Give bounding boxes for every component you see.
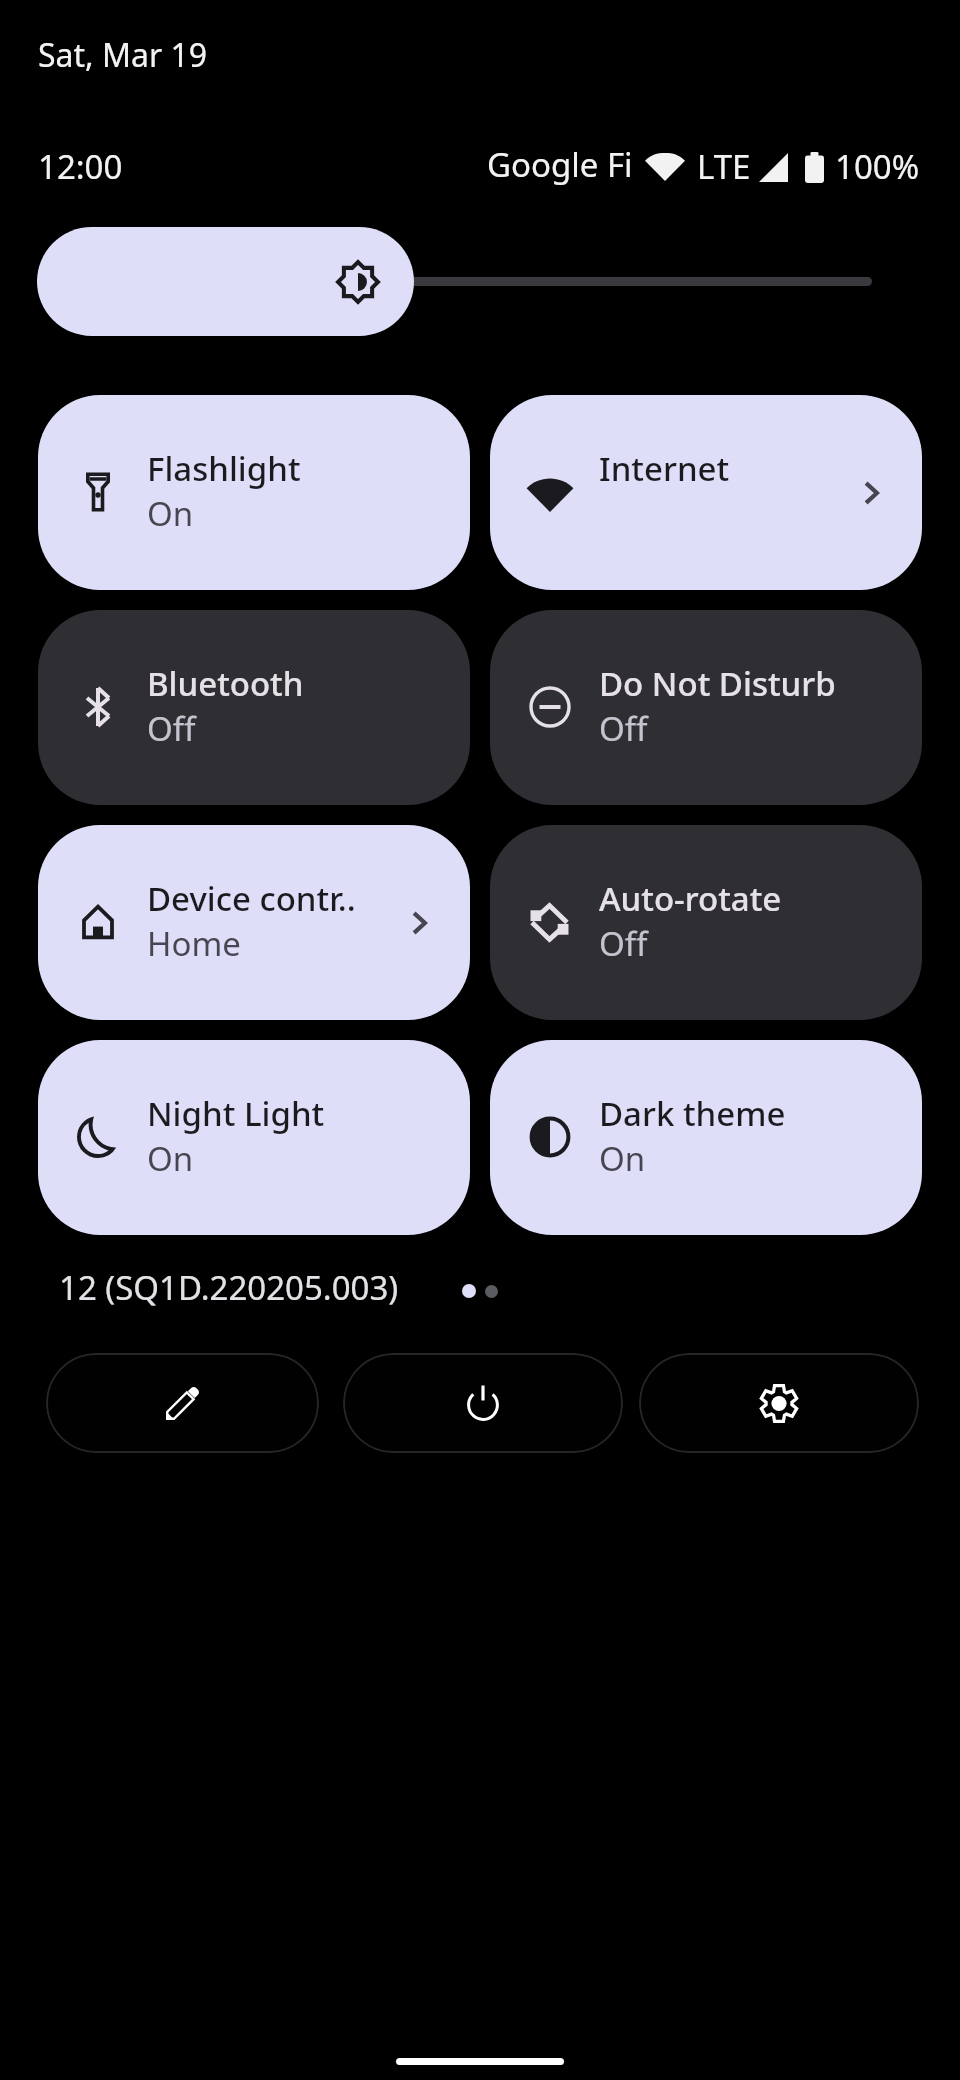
staticText: Home: [147, 921, 241, 966]
button[interactable]: Night Light: [38, 1040, 470, 1235]
staticText: Google Fi: [487, 142, 633, 187]
staticText: Off: [599, 921, 648, 966]
staticText: Off: [599, 706, 648, 751]
button[interactable]: Flashlight: [38, 395, 470, 590]
button[interactable]: Edit: [46, 1353, 319, 1453]
staticText: On: [147, 1136, 194, 1181]
button[interactable]: Power: [343, 1353, 623, 1453]
staticText: 12:00: [38, 144, 123, 189]
staticText: On: [599, 1136, 646, 1181]
staticText: Sat, Mar 19: [38, 33, 208, 77]
staticText: Flashlight: [147, 446, 301, 491]
button[interactable]: Settings: [639, 1353, 919, 1453]
staticText: Off: [147, 706, 196, 751]
button[interactable]: Device contr..: [38, 825, 470, 1020]
staticText: Do Not Disturb: [599, 661, 836, 706]
button[interactable]: Bluetooth: [38, 610, 470, 805]
staticText: Dark theme: [599, 1091, 786, 1136]
staticText: Night Light: [147, 1091, 325, 1136]
staticText: Auto-rotate: [599, 876, 782, 921]
staticText: 100%: [835, 144, 920, 189]
button[interactable]: Dark theme: [490, 1040, 922, 1235]
staticText: LTE: [697, 144, 751, 189]
button[interactable]: Internet: [490, 395, 922, 590]
staticText: Device contr..: [147, 876, 356, 921]
staticText: 12 (SQ1D.220205.003): [59, 1265, 399, 1310]
staticText: Bluetooth: [147, 661, 304, 706]
staticText: Internet: [599, 446, 730, 491]
button[interactable]: Auto-rotate: [490, 825, 922, 1020]
button[interactable]: Brightness: [37, 227, 414, 336]
button[interactable]: Do Not Disturb: [490, 610, 922, 805]
staticText: On: [147, 491, 194, 536]
